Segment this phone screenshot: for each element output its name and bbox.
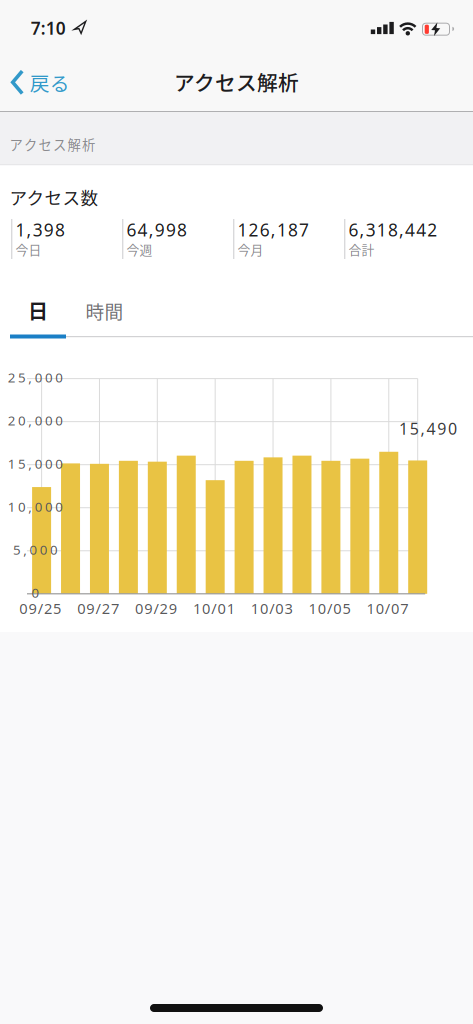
staticText: 0 [45,412,53,429]
staticText: 2 [102,599,110,618]
staticText: 9 [86,599,94,618]
staticText: 1 [8,455,16,472]
staticText: 0 [275,599,283,618]
staticText: 2 [8,412,16,429]
staticText: 1 [251,599,259,618]
staticText: 1 [277,218,287,241]
staticText: , [28,455,32,472]
staticText: 0 [35,455,43,472]
staticText: 2 [44,599,52,618]
staticText: ア [10,134,23,154]
staticText: 3 [33,218,43,241]
staticText: 2 [249,218,259,241]
staticText: 7 [400,599,408,618]
staticText: 6 [126,218,136,241]
staticText: 0 [45,368,53,386]
staticText: 9 [144,599,152,618]
staticText: アクセス解析 [174,67,299,97]
staticText: 1 [237,218,247,241]
staticText: 1 [309,599,317,618]
staticText: , [271,218,276,241]
staticText: 1 [8,498,16,515]
staticText: 1 [193,599,201,618]
staticText: 4 [426,418,435,439]
staticText: 0 [77,599,85,618]
staticText: 0 [135,599,143,618]
staticText: 0 [18,412,26,429]
staticText: 0 [55,498,63,515]
staticText: , [360,218,365,241]
staticText: 5 [18,368,26,386]
staticText: 5 [13,541,21,558]
staticText: 7:10 [31,17,66,40]
staticText: ス [53,134,66,154]
staticText: 解 [68,134,81,154]
staticText: 今日 [15,240,41,258]
staticText: , [27,218,32,241]
staticText: , [149,218,154,241]
staticText: 今週 [126,240,152,258]
staticText: 0 [45,455,53,472]
staticText: 1 [227,599,235,618]
staticText: , [28,412,32,429]
staticText: 9 [44,218,54,241]
staticText: 0 [31,584,39,601]
staticText: 6 [348,218,358,241]
staticText: 5 [18,455,26,472]
staticText: / [153,599,158,618]
button[interactable]: 戻る [11,60,77,104]
staticText: 9 [28,599,36,618]
staticText: 9 [155,218,165,241]
staticText: 戻る [30,68,70,97]
staticText: 0 [29,541,37,558]
button[interactable]: 時間 [75,290,135,330]
staticText: , [28,368,32,386]
staticText: 0 [448,418,457,439]
staticText: 4 [138,218,148,241]
staticText: / [96,599,101,618]
staticText: 今月 [237,240,263,258]
staticText: 1 [399,418,408,439]
staticText: 0 [35,368,43,386]
staticText: アクセス数 [9,184,98,209]
staticText: 8 [288,218,298,241]
staticText: , [399,218,404,241]
staticText: 0 [391,599,399,618]
staticText: / [327,599,332,618]
staticText: 5 [342,599,350,618]
staticText: 0 [217,599,225,618]
staticText: 4 [416,218,426,241]
staticText: / [385,599,390,618]
staticText: 日 [28,296,48,325]
staticText: 析 [82,134,95,154]
staticText: 8 [55,218,65,241]
staticText: 0 [40,541,48,558]
staticText: 6 [260,218,270,241]
staticText: 0 [260,599,268,618]
staticText: 8 [177,218,187,241]
staticText: 0 [318,599,326,618]
staticText: 0 [35,412,43,429]
staticText: 0 [55,368,63,386]
staticText: ク [24,134,37,154]
staticText: 2 [160,599,168,618]
staticText: 0 [45,498,53,515]
staticText: 9 [169,599,177,618]
staticText: 0 [202,599,210,618]
staticText: 5 [53,599,61,618]
staticText: 2 [8,368,16,386]
staticText: / [38,599,43,618]
staticText: 0 [50,541,58,558]
staticText: / [211,599,216,618]
staticText: , [23,541,27,558]
staticText: 4 [405,218,415,241]
staticText: 7 [299,218,309,241]
staticText: 1 [15,218,25,241]
button[interactable]: 日 [10,290,66,330]
staticText: 2 [427,218,437,241]
staticText: 5 [410,418,419,439]
staticText: 0 [18,498,26,515]
staticText: 0 [376,599,384,618]
staticText: 3 [366,218,376,241]
staticText: / [269,599,274,618]
